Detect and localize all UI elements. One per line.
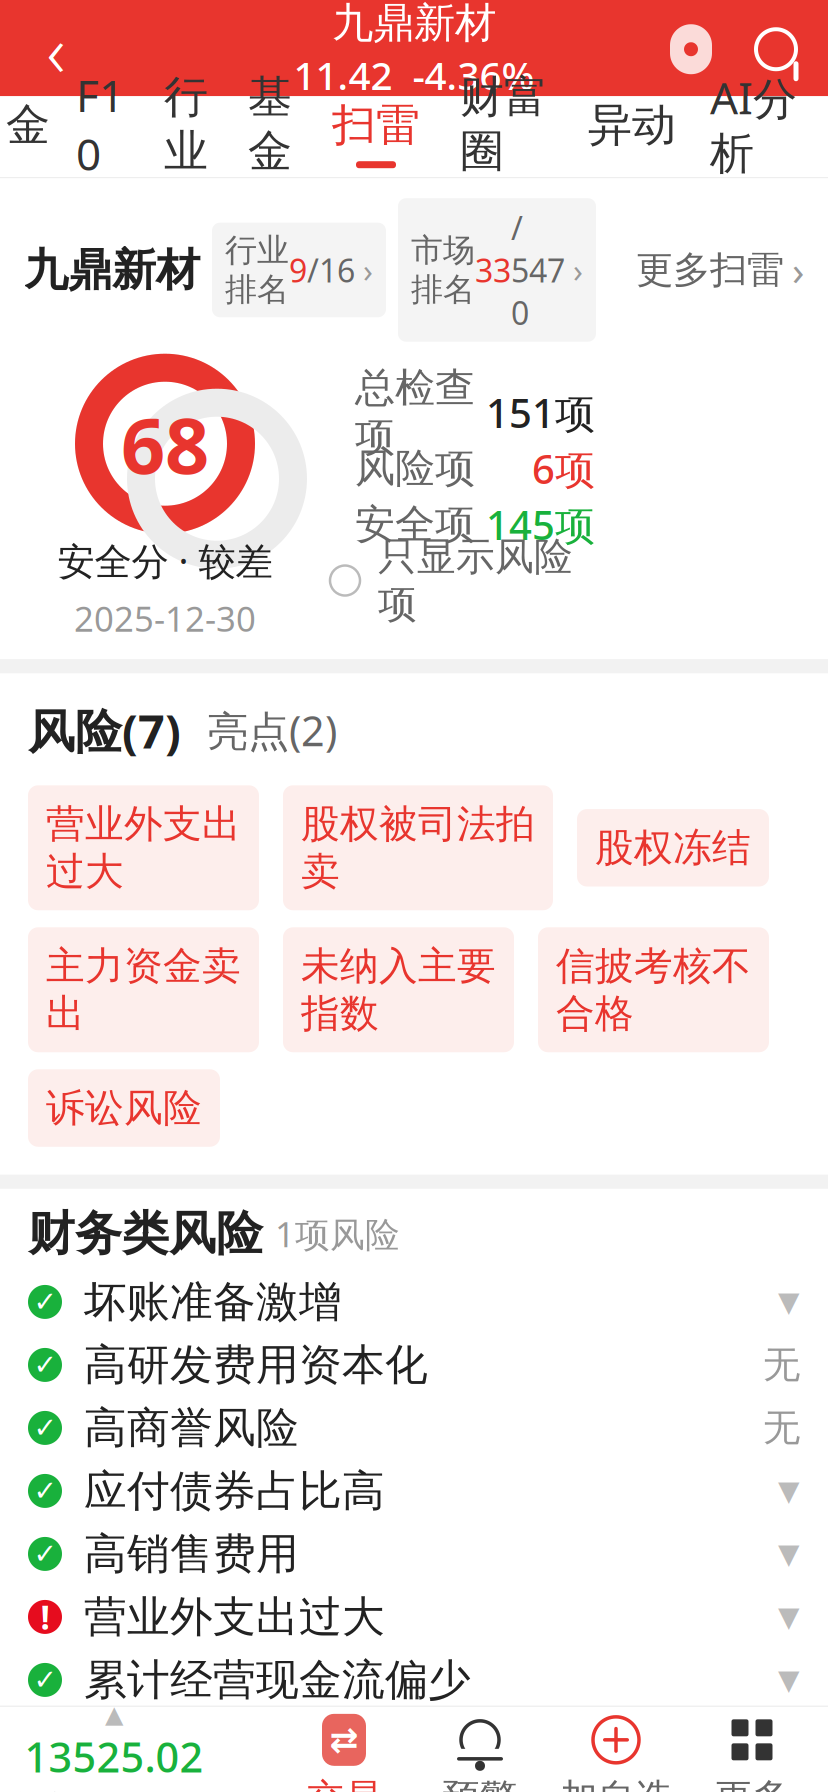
staticText: 更多 xyxy=(715,1775,789,1792)
staticText: ▼ xyxy=(778,1286,800,1318)
staticText: 市场排名 xyxy=(411,231,475,309)
button[interactable]: ⇄ xyxy=(276,1707,412,1792)
button[interactable]: ✓ xyxy=(0,1459,828,1522)
staticText: 应付债券占比高 xyxy=(84,1465,385,1517)
button[interactable]: ! xyxy=(0,1585,828,1648)
button[interactable]: ▲ xyxy=(8,1707,220,1792)
staticText: ✓ xyxy=(33,1475,56,1507)
button[interactable]: 风险(7) xyxy=(28,699,181,761)
staticText: 扫雷 xyxy=(332,98,420,152)
button[interactable]: 行业排名 xyxy=(212,223,386,317)
button[interactable]: 加自选 xyxy=(548,1707,684,1792)
staticText: 68 xyxy=(121,392,209,495)
staticText: /5470 xyxy=(511,206,565,334)
button[interactable]: 行业 xyxy=(144,96,228,177)
staticText: 风险(7) xyxy=(28,699,181,761)
staticText: AI分析 xyxy=(710,68,797,181)
staticText: 1项风险 xyxy=(275,1211,400,1257)
staticText: 6项 xyxy=(532,442,595,495)
button[interactable]: ✓ xyxy=(0,1270,828,1333)
button[interactable]: 扫雷 xyxy=(312,96,440,177)
button[interactable]: 股权被司法拍卖 xyxy=(283,785,553,910)
staticText: 信披考核不合格 xyxy=(556,942,751,1037)
staticText: 股权被司法拍卖 xyxy=(301,800,535,895)
staticText: ✓ xyxy=(33,1349,56,1381)
staticText: 高商誉风险 xyxy=(84,1402,299,1454)
staticText: 预警 xyxy=(443,1775,517,1792)
staticText: 九鼎新材 xyxy=(24,243,200,297)
button[interactable]: 智能盯盘 xyxy=(650,6,732,92)
staticText: 安全项 xyxy=(355,500,475,549)
button[interactable]: ✓ xyxy=(0,1648,828,1711)
button[interactable]: 金 xyxy=(0,96,56,177)
staticText: 安全分 · 较差 xyxy=(57,536,272,585)
button[interactable]: 股权冻结 xyxy=(577,809,769,886)
staticText: › xyxy=(355,249,373,291)
staticText: 总检查项 xyxy=(355,363,475,462)
staticText: ▼ xyxy=(778,1475,800,1507)
staticText: ✓ xyxy=(33,1412,56,1444)
button[interactable]: 只显示风险项 xyxy=(330,555,620,605)
staticText: ✓ xyxy=(33,1286,56,1318)
button[interactable]: 主力资金卖出 xyxy=(28,927,259,1052)
button[interactable]: 诉讼风险 xyxy=(28,1069,220,1147)
staticText: 151项 xyxy=(486,386,595,439)
staticText: /16 xyxy=(307,249,355,291)
button[interactable]: F10 xyxy=(56,96,144,177)
staticText: 财务类风险 xyxy=(28,1205,263,1262)
staticText: › xyxy=(565,249,583,291)
button[interactable]: 更多扫雷 xyxy=(636,243,804,296)
staticText: ▼ xyxy=(778,1664,800,1696)
staticText: 33 xyxy=(475,249,511,291)
staticText: F10 xyxy=(76,66,124,183)
staticText: ▼ xyxy=(778,1601,800,1633)
staticText: 基金 xyxy=(248,70,292,178)
button[interactable]: 返回 xyxy=(8,6,104,92)
staticText: 无 xyxy=(763,1342,800,1388)
staticText: 无 xyxy=(763,1405,800,1451)
button[interactable]: 更多 xyxy=(684,1707,820,1792)
button[interactable]: 搜索 xyxy=(732,6,820,92)
staticText: ‹ xyxy=(46,1,65,97)
staticText: 高销售费用 xyxy=(84,1528,299,1580)
button[interactable]: 营业外支出过大 xyxy=(28,785,259,910)
staticText: 坏账准备激增 xyxy=(84,1276,342,1328)
staticText: 诉讼风险 xyxy=(46,1084,202,1132)
staticText: › xyxy=(792,243,804,296)
staticText: 财富圈 xyxy=(460,70,548,178)
staticText: ! xyxy=(40,1595,49,1639)
button[interactable]: 财富圈 xyxy=(440,96,568,177)
button[interactable]: 基金 xyxy=(228,96,312,177)
staticText: 交易 xyxy=(307,1775,381,1792)
staticText: 亮点(2) xyxy=(207,703,337,758)
staticText: 营业外支出过大 xyxy=(84,1591,385,1643)
staticText: 金 xyxy=(6,98,50,152)
staticText: 9 xyxy=(289,249,307,291)
staticText: ✓ xyxy=(33,1538,56,1570)
button[interactable]: 信披考核不合格 xyxy=(538,927,769,1052)
staticText: 2025-12-30 xyxy=(74,595,256,641)
staticText: ⇄ xyxy=(329,1720,358,1759)
button[interactable]: 亮点(2) xyxy=(207,703,337,758)
button[interactable]: 异动 xyxy=(568,96,696,177)
button[interactable]: ✓ xyxy=(0,1396,828,1459)
staticText: 未纳入主要指数 xyxy=(301,942,496,1037)
staticText: 异动 xyxy=(588,98,676,152)
button[interactable]: ✓ xyxy=(0,1333,828,1396)
staticText: 九鼎新材 xyxy=(332,0,496,48)
button[interactable]: ✓ xyxy=(0,1522,828,1585)
staticText: ▲ xyxy=(105,1701,123,1728)
staticText: ✓ xyxy=(33,1664,56,1696)
staticText: 13525.02 xyxy=(24,1729,203,1784)
staticText: 行业 xyxy=(164,70,208,178)
staticText: 风险项 xyxy=(355,444,475,493)
staticText: 更多扫雷 xyxy=(636,247,784,293)
button[interactable]: 未纳入主要指数 xyxy=(283,927,514,1052)
staticText: 累计经营现金流偏少 xyxy=(84,1654,471,1706)
staticText: 11.42 -4.36% xyxy=(293,49,534,101)
button[interactable]: 预警 xyxy=(412,1707,548,1792)
staticText: 加自选 xyxy=(560,1775,671,1792)
button[interactable]: 市场排名 xyxy=(398,198,596,342)
button[interactable]: AI分析 xyxy=(696,96,811,177)
